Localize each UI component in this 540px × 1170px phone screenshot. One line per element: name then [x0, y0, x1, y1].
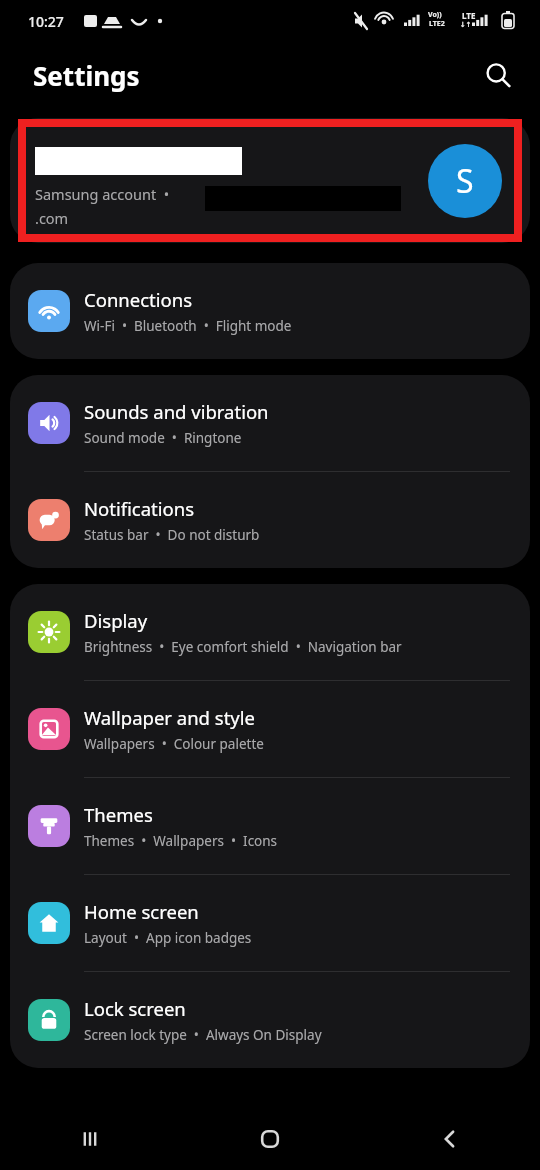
staticText: Notifications	[84, 496, 195, 521]
staticText: Settings	[33, 58, 140, 93]
staticText: LTE	[462, 10, 476, 21]
staticText: Wallpapers • Colour palette	[84, 735, 264, 753]
button[interactable]: Recent apps	[0, 1108, 180, 1170]
button[interactable]: Notifications	[10, 472, 530, 568]
staticText: Sound mode • Ringtone	[84, 429, 242, 447]
button[interactable]: Home	[180, 1108, 360, 1170]
staticText: LTE2	[429, 19, 445, 29]
staticText: Layout • App icon badges	[84, 929, 252, 947]
button[interactable]: Sounds and vibration	[10, 375, 530, 471]
staticText: Samsung account •	[35, 184, 170, 204]
staticText: Lock screen	[84, 996, 186, 1021]
staticText: ↓↑	[460, 21, 472, 29]
button[interactable]: Home screen	[10, 875, 530, 971]
button[interactable]: Connections	[10, 263, 530, 359]
staticText: Themes	[84, 802, 153, 827]
staticText: Vo))	[428, 10, 442, 20]
staticText: Screen lock type • Always On Display	[84, 1026, 322, 1044]
button[interactable]: Back	[360, 1108, 540, 1170]
staticText: Brightness • Eye comfort shield • Naviga…	[84, 638, 402, 656]
button[interactable]: Themes	[10, 778, 530, 874]
staticText: Display	[84, 608, 148, 633]
staticText: Wallpaper and style	[84, 705, 255, 730]
button[interactable]: Display	[10, 584, 530, 680]
staticText: Status bar • Do not disturb	[84, 526, 260, 544]
staticText: Sounds and vibration	[84, 399, 269, 424]
staticText: Wi-Fi • Bluetooth • Flight mode	[84, 317, 292, 335]
staticText: Home screen	[84, 899, 199, 924]
button[interactable]: Lock screen	[10, 972, 530, 1068]
button[interactable]: Search	[474, 51, 522, 99]
button[interactable]: Wallpaper and style	[10, 681, 530, 777]
staticText: Connections	[84, 287, 193, 312]
staticText: S	[456, 159, 474, 203]
staticText: .com	[35, 208, 69, 228]
button[interactable]: Samsung account •	[10, 118, 530, 243]
staticText: Themes • Wallpapers • Icons	[84, 832, 278, 850]
staticText: 10:27	[28, 12, 64, 31]
